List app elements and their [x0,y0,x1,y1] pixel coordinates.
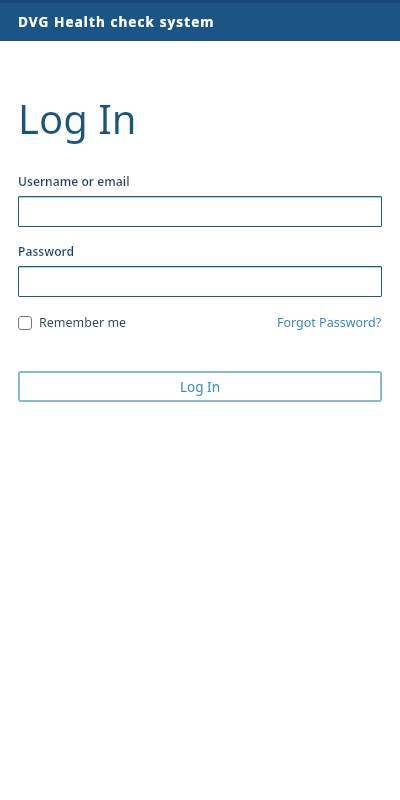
button[interactable] [18,266,382,297]
button[interactable]: Log In [18,371,382,402]
staticText: Log In [180,378,220,396]
staticText: DVG Health check system [18,13,215,31]
button[interactable] [18,196,382,227]
button[interactable]: Remember me [18,314,127,331]
staticText: Username or email [18,173,130,189]
staticText: Log In [18,91,137,145]
staticText: Password [18,243,75,259]
button[interactable]: Forgot Password? [277,314,382,331]
staticText: Remember me [39,314,127,331]
